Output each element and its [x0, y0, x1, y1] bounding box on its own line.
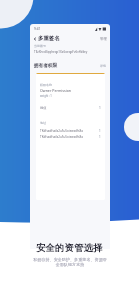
staticText: weight : 1 [40, 94, 52, 98]
staticText: Owner Permission [40, 88, 72, 93]
button[interactable]: TKdfsadfsafa2u5u5oiewsdfs8a [40, 128, 101, 133]
staticText: 安全的资管选择 [36, 242, 103, 254]
staticText: 9:41 [34, 27, 41, 31]
staticText: TEzXhvd3qqheqp1Xx6oeqpFv6vhVdey [34, 50, 88, 54]
button[interactable]: TKdfsadfsafa2u5u5oiewsdfs8a [40, 134, 101, 139]
button[interactable]: Back [33, 34, 107, 43]
staticText: 拥有者权限 [34, 63, 57, 69]
staticText: TKdfsadfsafa2u5u5oiewsdfs8a [40, 135, 83, 139]
staticText: 1 [99, 135, 101, 139]
staticText: 1 [99, 106, 101, 110]
staticText: 管理 [100, 37, 107, 41]
staticText: TKdfsadfsafa2u5u5oiewsdfs8a [40, 129, 83, 133]
other: Back [33, 37, 37, 41]
staticText: 详情 [100, 64, 106, 68]
staticText: 当前账号 [34, 44, 46, 48]
staticText: 私钥自持、安全防护、多重签名、资源管 全面队规方支持 [33, 257, 107, 267]
staticText: 1 [99, 129, 101, 133]
staticText: 多重签名 [38, 35, 60, 42]
staticText: 地址 [40, 121, 46, 125]
staticText: 权限名称 [40, 83, 52, 87]
button[interactable]: 阈值 [40, 105, 101, 111]
staticText: 阈值 [40, 106, 47, 110]
